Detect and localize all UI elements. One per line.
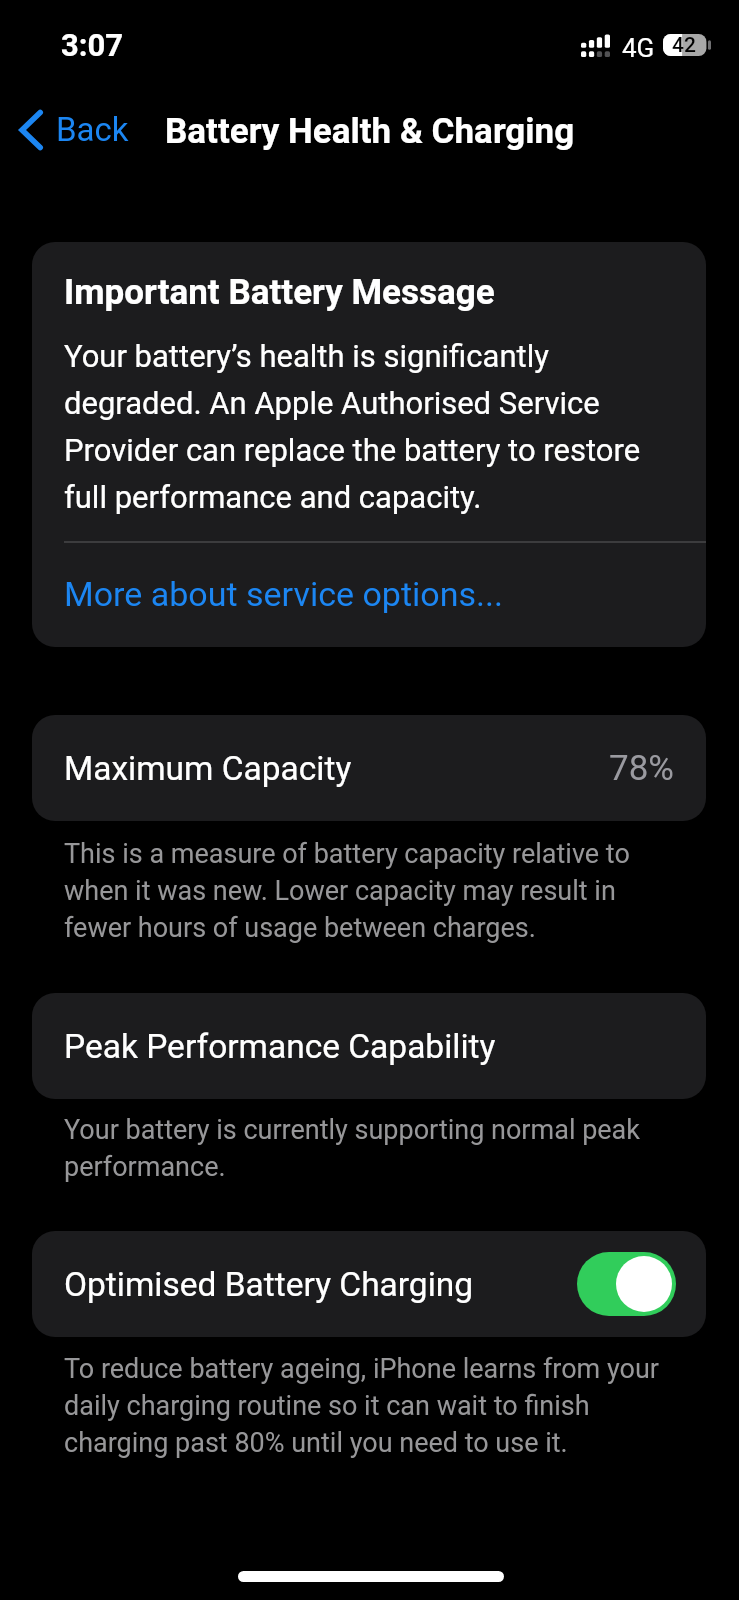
button[interactable]: Peak Performance Capability [32,993,706,1099]
staticText: Peak Performance Capability [64,1027,496,1066]
staticText: 3:07 [61,27,124,63]
button[interactable]: Maximum Capacity [32,715,706,821]
button[interactable]: Back [9,104,139,156]
staticText: Your battery’s health is significantly d… [64,329,680,517]
staticText: Optimised Battery Charging [64,1265,474,1304]
staticText: To reduce battery ageing, iPhone learns … [64,1349,676,1460]
staticText: More about service options... [64,574,503,614]
staticText: 4G [622,33,655,63]
staticText: 42 [672,33,696,55]
staticText: This is a measure of battery capacity re… [64,834,676,945]
staticText: Battery Health & Charging [165,111,575,152]
staticText: Maximum Capacity [64,749,352,788]
button[interactable]: Optimised Battery Charging, on [577,1252,676,1316]
staticText: Your battery is currently supporting nor… [64,1110,676,1184]
staticText: 78% [609,748,674,789]
staticText: Back [56,110,129,149]
staticText: Important Battery Message [64,272,495,313]
button[interactable]: More about service options... [32,543,706,647]
